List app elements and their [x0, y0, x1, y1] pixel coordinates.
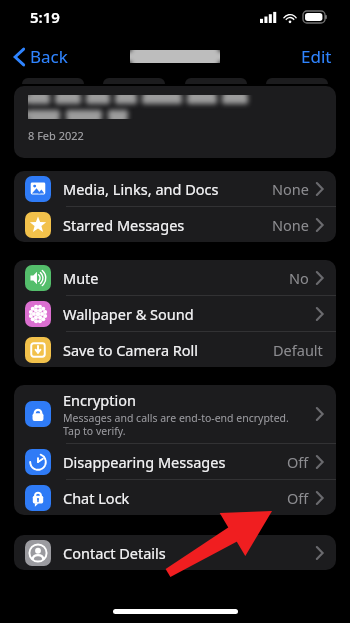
button[interactable]: Chat Lock: [14, 480, 336, 515]
staticText: Disappearing Messages: [63, 452, 226, 472]
button[interactable]: Edit: [297, 41, 336, 72]
button[interactable]: Save to Camera Roll: [14, 332, 336, 367]
button[interactable]: Contact Details: [14, 535, 336, 570]
staticText: Off: [287, 452, 309, 472]
button[interactable]: Back: [10, 41, 72, 72]
staticText: Starred Messages: [63, 215, 185, 235]
staticText: Save to Camera Roll: [63, 340, 199, 360]
button[interactable]: Encryption: [14, 385, 336, 443]
button[interactable]: Media, Links, and Docs: [14, 171, 336, 206]
staticText: Wallpaper & Sound: [63, 304, 194, 324]
staticText: Media, Links, and Docs: [63, 179, 219, 199]
staticText: Edit: [301, 45, 332, 68]
staticText: Off: [287, 488, 309, 508]
staticText: Messages and calls are end-to-end encryp…: [63, 411, 289, 438]
staticText: None: [272, 179, 309, 199]
button[interactable]: Starred Messages: [14, 207, 336, 242]
staticText: Encryption: [63, 390, 136, 410]
staticText: Chat Lock: [63, 488, 130, 508]
button[interactable]: Wallpaper & Sound: [14, 296, 336, 331]
staticText: None: [272, 215, 309, 235]
button[interactable]: 8 Feb 2022: [14, 86, 336, 158]
staticText: Mute: [63, 268, 99, 288]
button[interactable]: Disappearing Messages: [14, 444, 336, 479]
staticText: 8 Feb 2022: [28, 128, 84, 143]
staticText: Back: [30, 45, 68, 68]
staticText: Default: [273, 340, 323, 360]
staticText: 5:19: [30, 7, 60, 27]
button[interactable]: Mute: [14, 260, 336, 295]
staticText: Contact Details: [63, 543, 166, 563]
staticText: No: [289, 268, 309, 288]
